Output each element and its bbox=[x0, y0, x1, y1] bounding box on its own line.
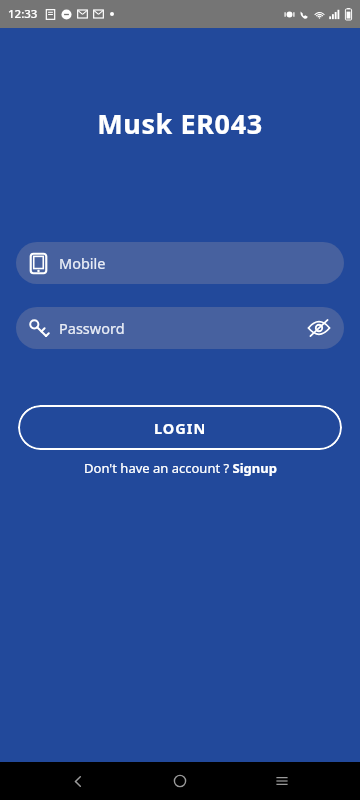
staticText: Musk ER043 bbox=[0, 105, 360, 142]
button[interactable]: Password bbox=[16, 307, 344, 349]
staticText: Password bbox=[59, 318, 306, 338]
button[interactable]: Back bbox=[54, 762, 102, 800]
button[interactable]: Home bbox=[156, 762, 204, 800]
staticText: 12:33 bbox=[8, 6, 38, 22]
button[interactable]: Mobile bbox=[16, 242, 344, 284]
button[interactable]: Recent apps bbox=[258, 762, 306, 800]
button[interactable]: Don't have an account ? Signup bbox=[0, 459, 360, 477]
staticText: LOGIN bbox=[154, 418, 207, 438]
button[interactable]: Show password bbox=[306, 315, 332, 341]
staticText: Don't have an account ? Signup bbox=[84, 459, 277, 477]
staticText: Mobile bbox=[59, 253, 106, 273]
button[interactable]: LOGIN bbox=[18, 405, 342, 450]
